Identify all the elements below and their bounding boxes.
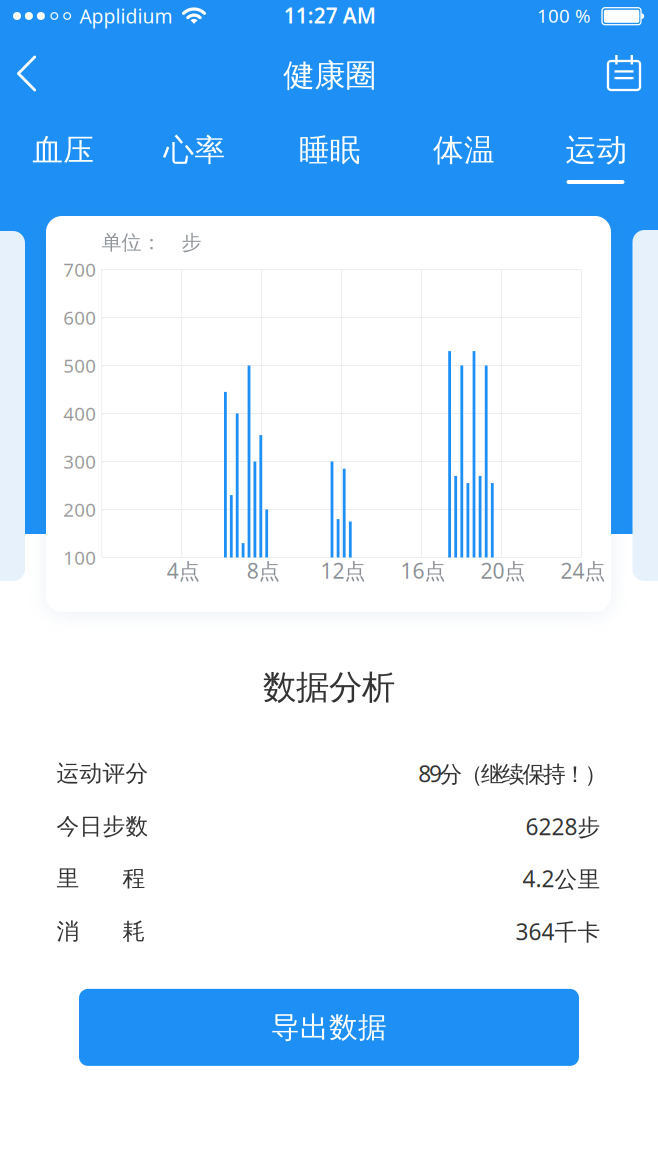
staticText: 消 — [56, 917, 79, 946]
staticText: 600 — [63, 305, 96, 330]
staticText: 12点 — [321, 556, 366, 585]
staticText: 血压 — [32, 131, 94, 170]
staticText: 健康圈 — [283, 56, 376, 95]
staticText: 心率 — [163, 131, 225, 170]
staticText: 耗 — [122, 917, 145, 946]
staticText: 16点 — [401, 556, 446, 585]
staticText: 运动评分 — [56, 759, 148, 788]
staticText: 20点 — [480, 556, 525, 585]
staticText: 400 — [63, 401, 96, 426]
button[interactable]: 导出数据 — [79, 989, 579, 1066]
staticText: 6228步 — [525, 811, 600, 842]
staticText: 4点 — [167, 556, 200, 585]
staticText: 里 — [56, 864, 79, 893]
staticText: 500 — [63, 353, 96, 378]
button[interactable]: 体温 — [398, 113, 529, 187]
staticText: 89分（继续保持！） — [418, 758, 607, 789]
button[interactable]: 血压 — [0, 113, 129, 187]
staticText: 100 — [63, 545, 96, 570]
staticText: 11:27 AM — [284, 1, 376, 29]
staticText: 体温 — [433, 131, 495, 170]
staticText: 4.2公里 — [522, 863, 600, 894]
button[interactable]: Records — [602, 51, 646, 95]
staticText: 24点 — [560, 556, 605, 585]
staticText: 300 — [63, 449, 96, 474]
staticText: 睡眠 — [299, 131, 361, 170]
staticText: 200 — [63, 497, 96, 522]
staticText: 100 % — [537, 3, 591, 28]
staticText: 8点 — [247, 556, 280, 585]
button[interactable]: 运动 — [531, 113, 658, 187]
staticText: 364千卡 — [515, 916, 600, 947]
staticText: Applidium — [79, 3, 172, 29]
staticText: 今日步数 — [56, 812, 148, 841]
staticText: 700 — [63, 257, 96, 282]
button[interactable]: Back — [6, 51, 50, 95]
button[interactable]: 心率 — [129, 113, 260, 187]
button[interactable]: 睡眠 — [264, 113, 395, 187]
staticText: 程 — [122, 864, 145, 893]
staticText: 数据分析 — [263, 666, 395, 708]
staticText: 运动 — [565, 131, 627, 170]
staticText: 导出数据 — [271, 1009, 387, 1045]
staticText: 单位： 步 — [101, 230, 201, 255]
